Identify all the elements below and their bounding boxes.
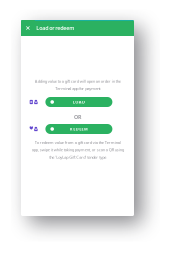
button[interactable]: LOAD bbox=[45, 97, 112, 107]
staticText: OR bbox=[74, 113, 81, 121]
staticText: Adding value to a gift card will open an… bbox=[34, 78, 120, 91]
staticText: LOAD bbox=[73, 99, 85, 105]
staticText: Load or redeem bbox=[36, 24, 74, 32]
button[interactable]: Close bbox=[21, 20, 35, 36]
staticText: To redeem value from a gift card via the… bbox=[31, 140, 123, 160]
button[interactable]: REDEEM bbox=[45, 124, 112, 134]
staticText: REDEEM bbox=[70, 126, 88, 132]
